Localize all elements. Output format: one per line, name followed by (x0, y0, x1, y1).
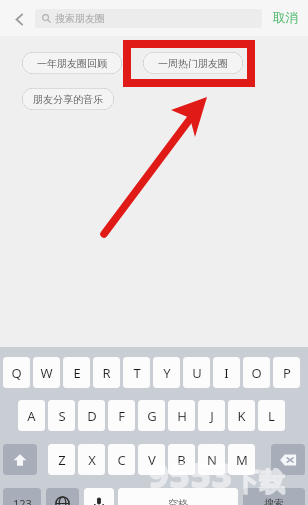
button[interactable]: I (213, 357, 240, 388)
button[interactable]: W (33, 357, 60, 388)
button[interactable]: Backspace (271, 444, 305, 475)
staticText: G (147, 407, 157, 425)
button[interactable]: 123 (3, 488, 41, 505)
staticText: 一周热门朋友圈 (158, 57, 228, 70)
button[interactable]: Back (6, 6, 32, 32)
button[interactable]: 一年朋友圈回顾 (22, 52, 122, 74)
button[interactable]: K (228, 400, 255, 431)
button[interactable]: T (123, 357, 150, 388)
button[interactable]: A (18, 400, 45, 431)
staticText: C (117, 451, 126, 469)
button[interactable]: V (138, 444, 165, 475)
button[interactable]: 一周热门朋友圈 (143, 52, 243, 74)
button[interactable]: F (108, 400, 135, 431)
button[interactable]: Voice input (84, 488, 114, 505)
button[interactable]: X (78, 444, 105, 475)
staticText: U (192, 364, 202, 382)
staticText: 一年朋友圈回顾 (37, 57, 107, 70)
button[interactable]: 搜索 (243, 488, 305, 505)
button[interactable]: U (183, 357, 210, 388)
button[interactable]: Switch keyboard (46, 488, 79, 505)
staticText: L (268, 407, 275, 425)
button[interactable]: L (258, 400, 285, 431)
staticText: H (177, 407, 187, 425)
staticText: A (27, 407, 36, 425)
staticText: J (210, 407, 214, 425)
staticText: 搜索朋友圈 (55, 12, 105, 25)
staticText: N (207, 451, 217, 469)
staticText: 9553 (148, 450, 233, 499)
staticText: 朋友分享的音乐 (33, 93, 103, 106)
button[interactable]: Shift (3, 444, 37, 475)
staticText: R (102, 364, 111, 382)
staticText: Q (11, 364, 22, 382)
button[interactable]: C (108, 444, 135, 475)
staticText: V (148, 451, 156, 469)
staticText: 搜索 (264, 497, 284, 505)
staticText: F (118, 407, 125, 425)
button[interactable]: R (93, 357, 120, 388)
staticText: M (236, 451, 248, 469)
staticText: 取消 (273, 10, 298, 26)
staticText: D (87, 407, 97, 425)
button[interactable]: D (78, 400, 105, 431)
button[interactable]: B (168, 444, 195, 475)
button[interactable]: E (63, 357, 90, 388)
staticText: X (88, 451, 96, 469)
button[interactable]: H (168, 400, 195, 431)
staticText: Z (58, 451, 66, 469)
button[interactable]: Q (3, 357, 30, 388)
staticText: P (283, 364, 291, 382)
staticText: B (177, 451, 186, 469)
button[interactable]: 空格 (118, 488, 238, 505)
button[interactable]: M (228, 444, 255, 475)
button[interactable]: Y (153, 357, 180, 388)
staticText: T (133, 364, 141, 382)
staticText: O (251, 364, 262, 382)
button[interactable]: 搜索朋友圈 (35, 9, 262, 28)
staticText: I (224, 364, 229, 382)
button[interactable]: O (243, 357, 270, 388)
button[interactable]: Z (48, 444, 75, 475)
button[interactable]: G (138, 400, 165, 431)
button[interactable]: S (48, 400, 75, 431)
staticText: 下载 (233, 466, 285, 499)
staticText: S (58, 407, 66, 425)
button[interactable]: 朋友分享的音乐 (22, 88, 114, 110)
staticText: E (73, 364, 81, 382)
button[interactable]: P (273, 357, 300, 388)
button[interactable]: 取消 (265, 5, 305, 31)
staticText: 空格 (168, 497, 188, 505)
button[interactable]: N (198, 444, 225, 475)
staticText: K (237, 407, 246, 425)
staticText: Y (163, 364, 171, 382)
staticText: W (40, 364, 53, 382)
staticText: 123 (13, 496, 32, 505)
button[interactable]: J (198, 400, 225, 431)
